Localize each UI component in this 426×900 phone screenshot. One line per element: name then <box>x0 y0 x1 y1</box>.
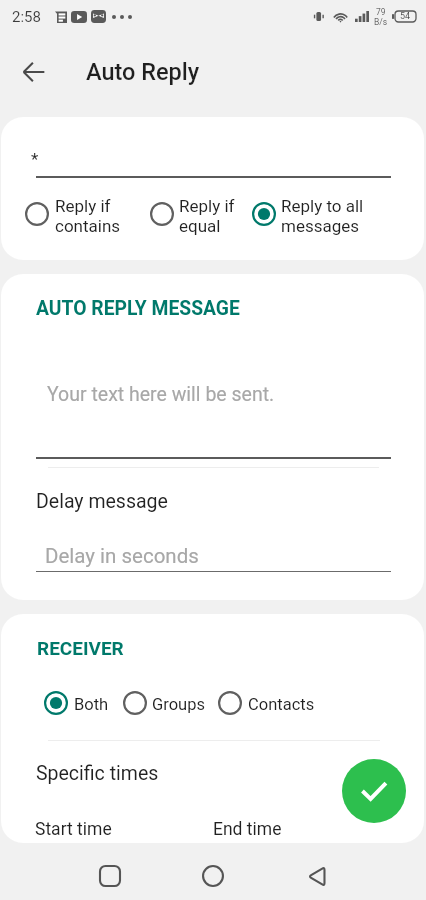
staticText: Delay in seconds <box>45 544 199 568</box>
staticText: AUTO REPLY MESSAGE <box>36 297 240 320</box>
button[interactable] <box>252 198 361 230</box>
staticText: 54 <box>400 11 411 22</box>
staticText: messages <box>281 216 360 236</box>
staticText: Contacts <box>248 695 315 714</box>
button[interactable] <box>25 198 134 230</box>
staticText: 2:58 <box>12 8 41 26</box>
button[interactable] <box>123 687 232 719</box>
staticText: B/s <box>374 17 388 27</box>
staticText: 79 <box>376 7 386 17</box>
staticText: Reply if <box>55 196 111 216</box>
staticText: Delay message <box>36 490 168 513</box>
staticText: Specific times <box>36 762 159 785</box>
staticText: Your text here will be sent. <box>47 383 275 406</box>
button[interactable] <box>44 687 153 719</box>
staticText: Both <box>74 695 109 714</box>
button[interactable]: Recents <box>86 852 134 900</box>
staticText: Groups <box>152 695 205 714</box>
staticText: equal <box>179 216 221 236</box>
staticText: End time <box>213 819 282 840</box>
staticText: Reply if <box>179 196 235 216</box>
staticText: Start time <box>35 819 112 840</box>
staticText: RECEIVER <box>37 637 124 659</box>
staticText: Auto Reply <box>86 58 200 86</box>
staticText: Reply to all <box>281 196 364 216</box>
button[interactable]: Back <box>292 852 340 900</box>
button[interactable]: Back <box>13 51 55 93</box>
button[interactable]: Save <box>342 759 406 823</box>
staticText: contains <box>55 216 121 236</box>
button[interactable] <box>218 687 327 719</box>
staticText: * <box>31 149 39 169</box>
button[interactable] <box>150 198 259 230</box>
button[interactable]: Home <box>189 852 237 900</box>
